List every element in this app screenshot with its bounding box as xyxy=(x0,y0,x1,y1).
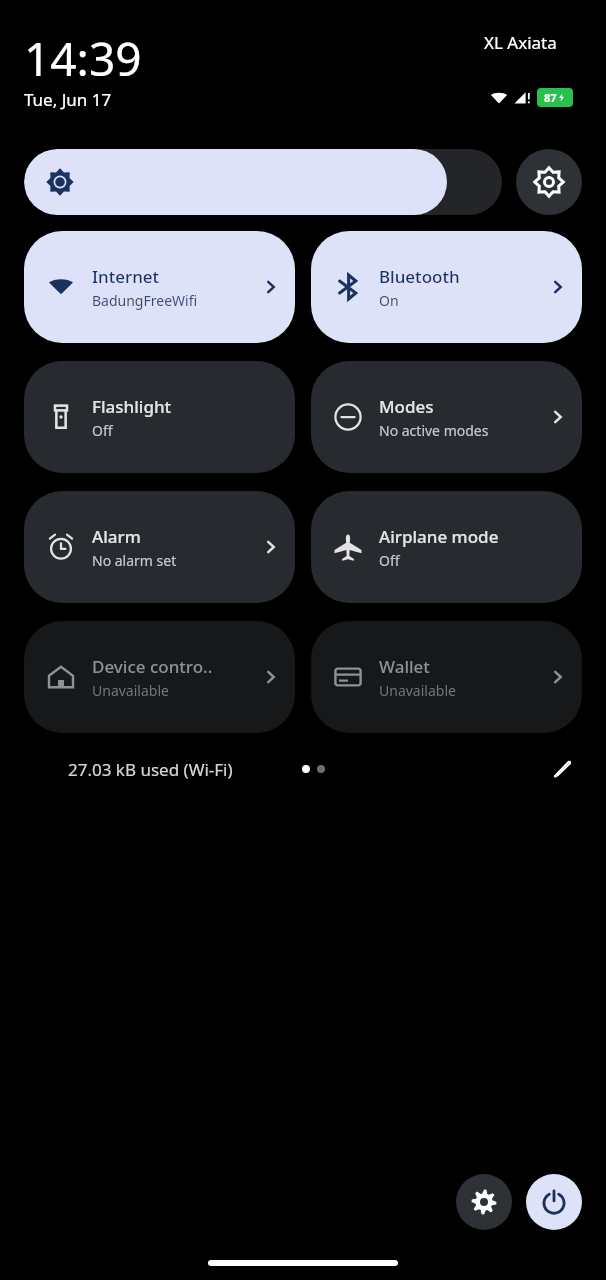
staticText: On xyxy=(379,291,399,310)
button[interactable]: Brightness xyxy=(24,149,502,215)
button[interactable]: Edit tiles xyxy=(542,749,582,789)
button[interactable]: Internet xyxy=(24,231,295,343)
staticText: Alarm xyxy=(92,525,141,548)
button[interactable]: Wallet xyxy=(311,621,582,733)
staticText: XL Axiata xyxy=(484,31,557,54)
staticText: Wallet xyxy=(379,655,430,678)
staticText: BadungFreeWifi xyxy=(92,291,198,310)
button[interactable]: Brightness settings xyxy=(516,149,582,215)
staticText: 27.03 kB used (Wi-Fi) xyxy=(68,758,233,781)
staticText: Unavailable xyxy=(379,681,456,700)
staticText: 87 xyxy=(544,90,557,105)
button[interactable]: Flashlight xyxy=(24,361,295,473)
button[interactable]: Alarm xyxy=(24,491,295,603)
staticText: Unavailable xyxy=(92,681,169,700)
staticText: Tue, Jun 17 xyxy=(24,88,112,111)
staticText: Flashlight xyxy=(92,395,172,418)
button[interactable]: Power xyxy=(526,1174,582,1230)
staticText: Off xyxy=(92,421,113,440)
button[interactable]: Airplane mode xyxy=(311,491,582,603)
staticText: Airplane mode xyxy=(379,525,499,548)
staticText: No alarm set xyxy=(92,551,177,570)
button[interactable]: Device contro.. xyxy=(24,621,295,733)
staticText: Internet xyxy=(92,265,160,288)
staticText: Bluetooth xyxy=(379,265,460,288)
staticText: Off xyxy=(379,551,400,570)
button[interactable]: Settings xyxy=(456,1174,512,1230)
button[interactable]: Bluetooth xyxy=(311,231,582,343)
staticText: Modes xyxy=(379,395,434,418)
button[interactable]: Modes xyxy=(311,361,582,473)
staticText: Device contro.. xyxy=(92,655,213,678)
staticText: No active modes xyxy=(379,421,489,440)
staticText: 14:39 xyxy=(24,27,142,90)
